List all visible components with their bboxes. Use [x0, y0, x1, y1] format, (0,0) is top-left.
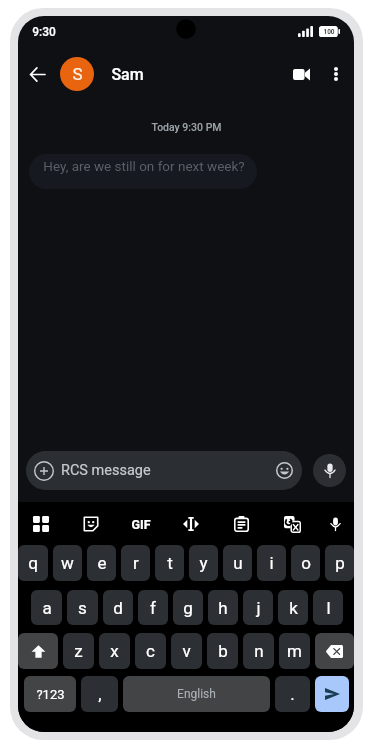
staticText: m [287, 641, 302, 661]
staticText: r [133, 553, 139, 573]
button[interactable]: Video call [281, 54, 321, 94]
button[interactable]: m [279, 633, 310, 669]
staticText: 9:30 [32, 25, 56, 39]
staticText: a [42, 598, 52, 618]
button[interactable]: More options [317, 55, 354, 93]
staticText: l [326, 598, 331, 618]
button[interactable]: Backspace [315, 633, 354, 669]
staticText: c [146, 641, 155, 661]
button[interactable]: Send [315, 676, 349, 712]
staticText: y [199, 553, 208, 573]
staticText: x [110, 641, 119, 661]
staticText: i [269, 553, 274, 573]
staticText: f [150, 598, 156, 618]
button[interactable]: Text editing [177, 510, 205, 538]
staticText: d [113, 598, 123, 618]
button[interactable]: d [103, 590, 133, 625]
button[interactable]: t [155, 545, 184, 581]
button[interactable]: r [121, 545, 150, 581]
staticText: S [72, 64, 83, 84]
button[interactable]: z [63, 633, 94, 669]
staticText: Sam [111, 65, 144, 84]
button[interactable]: f [138, 590, 168, 625]
button[interactable]: Apps [27, 510, 55, 538]
staticText: z [74, 641, 83, 661]
staticText: Hey, are we still on for next week? [43, 158, 245, 174]
button[interactable]: Voice message [313, 454, 346, 487]
button[interactable]: Clipboard [227, 510, 255, 538]
staticText: o [301, 553, 311, 573]
staticText: v [182, 641, 191, 661]
button[interactable]: e [87, 545, 116, 581]
staticText: g [183, 598, 193, 618]
staticText: u [233, 553, 243, 573]
button[interactable]: i [257, 545, 286, 581]
button[interactable]: Shift [18, 633, 58, 669]
button[interactable]: s [67, 590, 98, 625]
staticText: Today 9:30 PM [151, 121, 222, 133]
button[interactable]: Stickers [77, 510, 105, 538]
staticText: , [98, 684, 102, 704]
staticText: j [256, 598, 261, 618]
button[interactable]: p [325, 545, 354, 581]
button[interactable]: RCS message [26, 451, 302, 490]
button[interactable]: n [243, 633, 274, 669]
button[interactable]: k [278, 590, 308, 625]
button[interactable]: u [223, 545, 252, 581]
button[interactable]: Voice input [321, 510, 349, 538]
staticText: GIF [131, 517, 151, 532]
button[interactable]: v [171, 633, 202, 669]
button[interactable]: y [189, 545, 218, 581]
button[interactable]: x [99, 633, 130, 669]
staticText: s [78, 598, 87, 618]
staticText: h [218, 598, 228, 618]
button[interactable]: S [60, 47, 290, 101]
staticText: b [218, 641, 228, 661]
button[interactable]: w [53, 545, 82, 581]
button[interactable]: h [208, 590, 238, 625]
button[interactable]: ?123 [24, 676, 76, 712]
staticText: . [290, 684, 295, 704]
button[interactable]: Translate [278, 510, 306, 538]
button[interactable]: q [18, 545, 48, 581]
button[interactable]: Back [18, 54, 57, 94]
button[interactable]: g [173, 590, 203, 625]
button[interactable]: a [31, 590, 62, 625]
button[interactable]: . [275, 676, 310, 712]
staticText: p [335, 553, 345, 573]
button[interactable]: b [207, 633, 238, 669]
button[interactable]: j [243, 590, 273, 625]
staticText: English [177, 687, 216, 701]
button[interactable]: English [123, 676, 270, 712]
button[interactable]: , [81, 676, 118, 712]
button[interactable]: l [313, 590, 343, 625]
staticText: t [167, 553, 173, 573]
staticText: RCS message [61, 462, 276, 479]
button[interactable]: c [135, 633, 166, 669]
staticText: ?123 [36, 687, 65, 702]
button[interactable]: GIF [127, 510, 155, 538]
staticText: e [97, 553, 107, 573]
staticText: q [28, 553, 38, 573]
staticText: n [254, 641, 264, 661]
staticText: w [61, 553, 74, 573]
staticText: k [289, 598, 298, 618]
button[interactable]: Hey, are we still on for next week? [29, 154, 257, 189]
staticText: 100 [323, 28, 335, 36]
button[interactable]: o [291, 545, 320, 581]
